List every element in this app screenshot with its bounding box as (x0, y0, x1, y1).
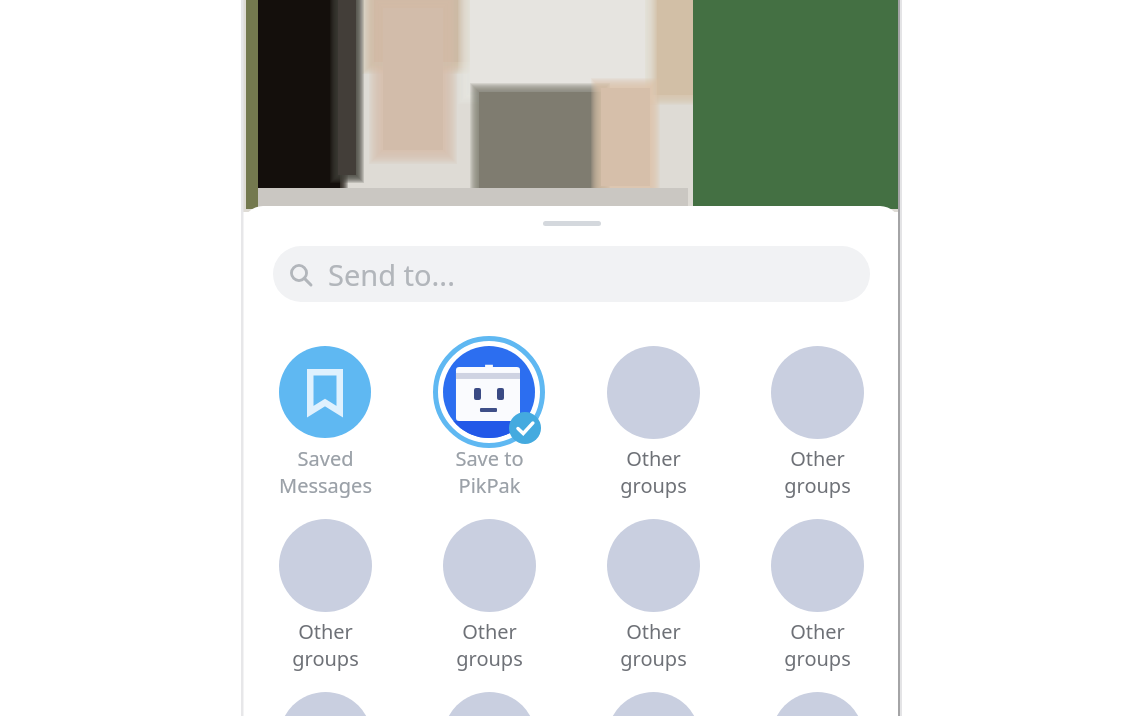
staticText: Other groups (620, 618, 687, 672)
staticText: Other groups (784, 618, 851, 672)
button[interactable]: Other groups (243, 685, 407, 716)
staticText: Other groups (456, 618, 523, 672)
button[interactable]: Other groups (571, 685, 735, 716)
button[interactable]: Other groups (243, 512, 407, 685)
button[interactable]: Other groups (571, 339, 735, 512)
button[interactable]: Selected (407, 339, 571, 512)
button[interactable]: Other groups (735, 339, 899, 512)
button[interactable]: Other groups (735, 512, 899, 685)
staticText: Other groups (784, 445, 851, 499)
staticText: Saved Messages (279, 445, 372, 499)
button[interactable]: Other groups (407, 512, 571, 685)
staticText: Other groups (292, 618, 359, 672)
staticText: Other groups (620, 445, 687, 499)
button[interactable]: Other groups (571, 512, 735, 685)
button[interactable]: Saved Messages (243, 339, 407, 512)
staticText: Save to PikPak (455, 445, 524, 499)
button[interactable]: Send to... (273, 246, 870, 302)
other: Selected (509, 412, 541, 444)
staticText: Send to... (328, 255, 455, 294)
button[interactable]: Other groups (407, 685, 571, 716)
button[interactable]: Other groups (735, 685, 899, 716)
